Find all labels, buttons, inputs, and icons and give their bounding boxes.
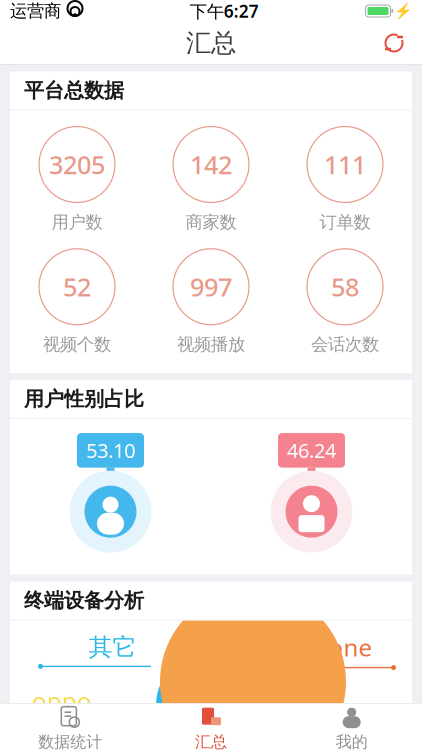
staticText: 用户数 <box>51 211 102 233</box>
staticText: 用户性别占比 <box>24 387 144 411</box>
button[interactable]: 我的 <box>281 701 422 750</box>
button[interactable]: 数据统计 <box>0 701 141 750</box>
staticText: 142 <box>190 148 232 181</box>
staticText: 其它 <box>88 632 136 662</box>
button[interactable]: 汇总 <box>141 701 281 750</box>
staticText: 10.82 <box>190 717 230 738</box>
staticText: 下午6:27 <box>190 0 259 22</box>
staticText: 46.24 <box>287 437 336 464</box>
staticText: 终端设备分析 <box>24 588 144 613</box>
staticText: 58 <box>331 270 359 304</box>
button[interactable]: 刷新 <box>372 23 416 63</box>
staticText: 视频播放 <box>177 334 245 355</box>
staticText: 视频个数 <box>43 334 111 355</box>
staticText: 会话次数 <box>311 334 379 355</box>
staticText: iPhone <box>292 631 372 663</box>
staticText: 数据统计 <box>38 732 102 750</box>
staticText: 运营商 <box>10 0 61 22</box>
staticText: 111 <box>324 148 366 181</box>
staticText: 997 <box>190 270 232 304</box>
staticText: 52 <box>63 270 91 304</box>
staticText: 3205 <box>49 148 105 181</box>
staticText: 汇总 <box>186 27 236 58</box>
staticText: oppo <box>32 685 92 717</box>
staticText: 我的 <box>336 732 368 750</box>
staticText: 53.10 <box>86 437 135 464</box>
staticText: ⚡ <box>394 3 412 19</box>
staticText: 汇总 <box>195 732 227 750</box>
staticText: 平台总数据 <box>24 78 124 103</box>
staticText: 商家数 <box>185 211 236 233</box>
staticText: 订单数 <box>319 211 370 233</box>
